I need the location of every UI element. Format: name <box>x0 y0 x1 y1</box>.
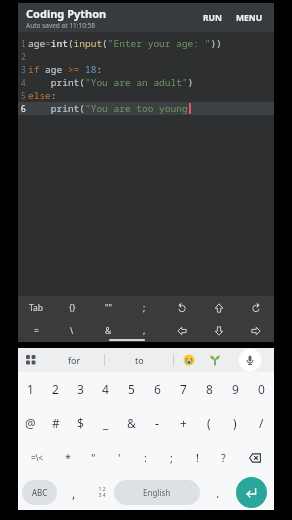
staticText: ! <box>196 450 199 465</box>
button[interactable] <box>163 296 200 319</box>
button[interactable]: $ <box>68 406 93 440</box>
button[interactable] <box>174 348 204 372</box>
button[interactable]: MENU <box>236 12 263 24</box>
button[interactable]: ; <box>126 296 163 319</box>
button[interactable]: ' <box>106 440 132 475</box>
button[interactable]: & <box>118 406 144 440</box>
button[interactable]: 3 <box>68 372 93 406</box>
staticText: 0 <box>258 381 265 397</box>
button[interactable]: , <box>126 319 163 342</box>
staticText: @ <box>25 415 36 431</box>
button[interactable]: 7 <box>170 372 196 406</box>
staticText: else: <box>28 89 57 102</box>
button[interactable]: RUN <box>203 12 222 24</box>
staticText: English <box>143 487 171 498</box>
staticText: ; <box>170 450 173 465</box>
staticText: Tab <box>29 302 44 314</box>
button[interactable] <box>163 319 200 342</box>
button[interactable]: 4 <box>93 372 118 406</box>
button[interactable] <box>18 348 44 372</box>
button[interactable]: , <box>57 475 90 510</box>
button[interactable]: * <box>56 440 81 475</box>
staticText: for <box>68 354 81 366</box>
staticText: ' <box>118 450 121 465</box>
staticText: 5 <box>21 90 26 101</box>
button[interactable]: \ <box>54 319 90 342</box>
staticText: if age >= 18: <box>28 63 103 76</box>
button[interactable]: & <box>90 319 126 342</box>
staticText: age=int(input("Enter your age: ")) <box>28 37 222 50</box>
staticText: 2 <box>52 381 59 397</box>
staticText: 1 2 3 4 <box>98 486 106 499</box>
button[interactable]: = <box>18 319 54 342</box>
button[interactable]: 9 <box>222 372 248 406</box>
staticText: 5 <box>128 381 135 397</box>
button[interactable]: =\< <box>18 440 56 475</box>
staticText: $ <box>77 415 84 431</box>
button[interactable]: "" <box>90 296 126 319</box>
button[interactable]: for <box>44 348 104 372</box>
staticText: 9 <box>232 381 239 397</box>
button[interactable]: ? <box>210 440 236 475</box>
staticText: = <box>34 325 39 337</box>
button[interactable]: 5 <box>118 372 144 406</box>
button[interactable]: # <box>43 406 68 440</box>
button[interactable]: ) <box>222 406 248 440</box>
button[interactable]: / <box>248 406 274 440</box>
staticText: {} <box>69 302 76 314</box>
button[interactable]: _ <box>93 406 118 440</box>
button[interactable] <box>204 348 226 372</box>
staticText: & <box>105 325 112 337</box>
staticText: 2 <box>21 51 26 62</box>
button[interactable]: 8 <box>196 372 222 406</box>
button[interactable]: ! <box>184 440 210 475</box>
staticText: * <box>65 450 72 465</box>
button[interactable]: 1 2 3 4 <box>90 475 113 510</box>
staticText: Auto saved at 11:10:58 <box>26 21 96 30</box>
staticText: 1 <box>27 381 34 397</box>
button[interactable] <box>236 477 267 508</box>
staticText: ( <box>207 415 211 431</box>
staticText: RUN <box>203 12 222 24</box>
button[interactable]: . <box>200 475 236 510</box>
staticText: # <box>52 415 60 431</box>
button[interactable]: 6 <box>144 372 170 406</box>
staticText: 8 <box>206 381 213 397</box>
staticText: ; <box>143 302 146 314</box>
button[interactable] <box>236 440 274 475</box>
staticText: / <box>259 415 264 431</box>
button[interactable] <box>200 319 237 342</box>
staticText: 4 <box>21 77 26 88</box>
staticText: print("You are an adult") <box>28 76 194 89</box>
button[interactable]: ABC <box>22 480 57 505</box>
button[interactable]: {} <box>54 296 90 319</box>
button[interactable]: 2 <box>43 372 68 406</box>
button[interactable]: 0 <box>248 372 274 406</box>
button[interactable]: + <box>170 406 196 440</box>
button[interactable]: ; <box>158 440 184 475</box>
button[interactable] <box>237 319 274 342</box>
button[interactable]: English <box>114 480 200 505</box>
staticText: - <box>155 415 159 431</box>
staticText: _ <box>103 415 109 431</box>
button[interactable]: 1 <box>18 372 43 406</box>
button[interactable]: to <box>105 348 173 372</box>
staticText: 3 <box>21 64 26 75</box>
button[interactable]: @ <box>18 406 43 440</box>
staticText: ) <box>233 415 237 431</box>
button[interactable]: Tab <box>18 296 54 319</box>
button[interactable]: : <box>132 440 158 475</box>
staticText: 7 <box>180 381 187 397</box>
staticText: : <box>144 450 147 465</box>
button[interactable]: " <box>81 440 106 475</box>
staticText: =\< <box>31 452 44 463</box>
staticText: 1 <box>21 38 26 49</box>
staticText: 6 <box>21 103 26 114</box>
button[interactable]: - <box>144 406 170 440</box>
button[interactable]: ( <box>196 406 222 440</box>
button[interactable] <box>200 296 237 319</box>
button[interactable] <box>237 296 274 319</box>
staticText: "" <box>105 302 112 314</box>
button[interactable] <box>226 348 274 372</box>
staticText: ABC <box>32 487 48 498</box>
